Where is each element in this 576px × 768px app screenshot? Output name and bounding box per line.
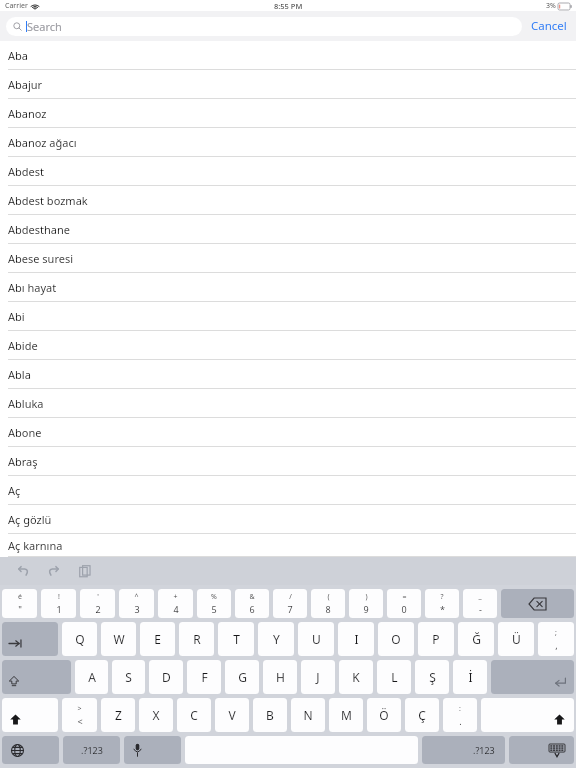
button[interactable]: Q xyxy=(62,622,97,656)
button[interactable]: Abone xyxy=(0,418,576,447)
button[interactable]: Abluka xyxy=(0,389,576,418)
button[interactable]: Search xyxy=(6,17,522,36)
button[interactable]: Ö xyxy=(367,698,401,732)
button[interactable]: N xyxy=(291,698,325,732)
staticText: G xyxy=(238,669,247,685)
button[interactable]: Aç karnına xyxy=(0,534,576,557)
button[interactable]: P xyxy=(418,622,454,656)
button[interactable]: ! xyxy=(41,589,76,618)
button[interactable]: X xyxy=(139,698,173,732)
button[interactable]: Aç gözlü xyxy=(0,505,576,534)
button[interactable]: W xyxy=(101,622,136,656)
button[interactable]: L xyxy=(377,660,411,694)
button[interactable]: Aba xyxy=(0,41,576,70)
button[interactable]: / xyxy=(273,589,307,618)
button[interactable]: Abese suresi xyxy=(0,244,576,273)
button[interactable]: Abdest xyxy=(0,157,576,186)
button[interactable]: Dictation xyxy=(124,736,181,764)
button[interactable]: E xyxy=(140,622,175,656)
button[interactable]: Abide xyxy=(0,331,576,360)
button[interactable]: Abla xyxy=(0,360,576,389)
button[interactable]: Y xyxy=(258,622,294,656)
button[interactable]: Cancel xyxy=(522,13,576,39)
staticText: M xyxy=(341,707,352,723)
button[interactable]: Ş xyxy=(415,660,449,694)
button[interactable]: K xyxy=(339,660,373,694)
button[interactable]: D xyxy=(149,660,183,694)
staticText: Abla xyxy=(8,367,31,382)
staticText: .?123 xyxy=(473,744,495,756)
button[interactable]: .?123 xyxy=(422,736,505,764)
button[interactable]: Shift xyxy=(2,698,58,732)
button[interactable]: + xyxy=(158,589,193,618)
button[interactable]: é xyxy=(2,589,37,618)
button[interactable]: Abajur xyxy=(0,70,576,99)
button[interactable]: Z xyxy=(101,698,135,732)
button[interactable]: _ xyxy=(463,589,497,618)
button[interactable]: O xyxy=(378,622,414,656)
button[interactable]: ) xyxy=(349,589,383,618)
button[interactable]: Ü xyxy=(498,622,534,656)
staticText: Aç xyxy=(8,483,21,498)
button[interactable]: Tab xyxy=(2,622,58,656)
staticText: Abı hayat xyxy=(8,280,57,295)
button[interactable]: ^ xyxy=(119,589,154,618)
button[interactable]: Redo xyxy=(41,558,67,584)
button[interactable]: G xyxy=(225,660,259,694)
button[interactable]: Caps lock xyxy=(2,660,71,694)
button[interactable]: Ğ xyxy=(458,622,494,656)
button[interactable]: M xyxy=(329,698,363,732)
button[interactable]: .?123 xyxy=(63,736,120,764)
button[interactable]: U xyxy=(298,622,334,656)
button[interactable]: ( xyxy=(311,589,345,618)
button[interactable]: Abdest bozmak xyxy=(0,186,576,215)
staticText: I xyxy=(354,631,359,647)
staticText: 3 xyxy=(134,603,140,615)
button[interactable]: Abdesthane xyxy=(0,215,576,244)
button[interactable]: ' xyxy=(80,589,115,618)
button[interactable]: R xyxy=(179,622,214,656)
staticText: V xyxy=(228,707,236,723)
button[interactable]: Paste xyxy=(72,558,98,584)
staticText: ( xyxy=(327,592,330,602)
button[interactable]: V xyxy=(215,698,249,732)
staticText: Ö xyxy=(379,707,389,723)
staticText: - xyxy=(479,603,482,615)
button[interactable]: C xyxy=(177,698,211,732)
button[interactable]: Hide keyboard xyxy=(509,736,574,764)
button[interactable]: % xyxy=(197,589,231,618)
button[interactable]: ? xyxy=(425,589,459,618)
button[interactable]: Abanoz xyxy=(0,99,576,128)
button[interactable]: Abı hayat xyxy=(0,273,576,302)
button[interactable]: = xyxy=(387,589,421,618)
button[interactable]: J xyxy=(301,660,335,694)
button[interactable]: A xyxy=(75,660,108,694)
button[interactable]: Change keyboard xyxy=(2,736,59,764)
button[interactable]: T xyxy=(218,622,254,656)
button[interactable]: ; xyxy=(538,622,574,656)
button[interactable]: Abanoz ağacı xyxy=(0,128,576,157)
button[interactable]: Abi xyxy=(0,302,576,331)
staticText: Cancel xyxy=(531,18,567,34)
button[interactable]: Return xyxy=(491,660,574,694)
button[interactable]: Aç xyxy=(0,476,576,505)
button[interactable]: Undo xyxy=(10,558,36,584)
button[interactable]: F xyxy=(187,660,221,694)
button[interactable]: I xyxy=(338,622,374,656)
button[interactable]: B xyxy=(253,698,287,732)
button[interactable]: & xyxy=(235,589,269,618)
button[interactable]: Ç xyxy=(405,698,439,732)
staticText: + xyxy=(173,592,178,602)
button[interactable]: Backspace xyxy=(501,589,574,618)
button[interactable]: Shift xyxy=(481,698,574,732)
button[interactable]: İ xyxy=(453,660,487,694)
staticText: S xyxy=(125,669,132,685)
button[interactable]: > xyxy=(62,698,97,732)
button[interactable]: : xyxy=(443,698,477,732)
button[interactable]: S xyxy=(112,660,145,694)
staticText: 4 xyxy=(173,603,179,615)
button[interactable]: H xyxy=(263,660,297,694)
button[interactable]: Abraş xyxy=(0,447,576,476)
staticText: Ş xyxy=(429,669,436,685)
